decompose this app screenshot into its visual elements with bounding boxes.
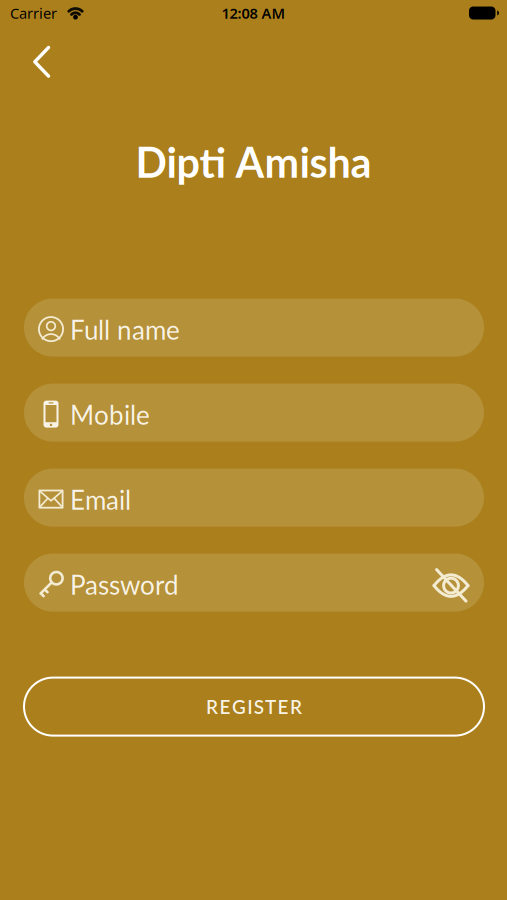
button[interactable]: Mobile	[24, 384, 484, 442]
staticText: T	[265, 695, 276, 718]
staticText: Password	[70, 569, 179, 600]
button[interactable]: R	[24, 678, 484, 736]
staticText: 12:08 AM	[221, 3, 285, 23]
staticText: R	[206, 695, 218, 718]
button[interactable]: Password	[24, 554, 484, 612]
staticText: Mobile	[70, 399, 150, 430]
staticText: I	[247, 695, 252, 718]
button[interactable]: Show password	[433, 565, 484, 601]
button[interactable]: Back	[33, 46, 50, 78]
staticText: S	[254, 695, 264, 718]
staticText: Email	[70, 484, 131, 515]
button[interactable]: Email	[24, 469, 484, 527]
staticText: Dipti Amisha	[135, 137, 371, 187]
button[interactable]: Full name	[24, 299, 484, 357]
staticText: E	[219, 695, 230, 718]
staticText: E	[277, 695, 288, 718]
staticText: R	[290, 695, 302, 718]
staticText: G	[232, 695, 246, 718]
staticText: Carrier	[10, 3, 57, 23]
staticText: Full name	[70, 314, 180, 345]
